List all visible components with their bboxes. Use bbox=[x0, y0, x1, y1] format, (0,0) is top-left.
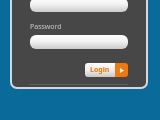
button[interactable] bbox=[30, 0, 128, 12]
button[interactable] bbox=[30, 35, 128, 49]
staticText: Login bbox=[90, 65, 110, 75]
other: Submit login bbox=[115, 63, 128, 77]
staticText: Password bbox=[30, 22, 62, 32]
button[interactable]: Login bbox=[85, 63, 128, 77]
